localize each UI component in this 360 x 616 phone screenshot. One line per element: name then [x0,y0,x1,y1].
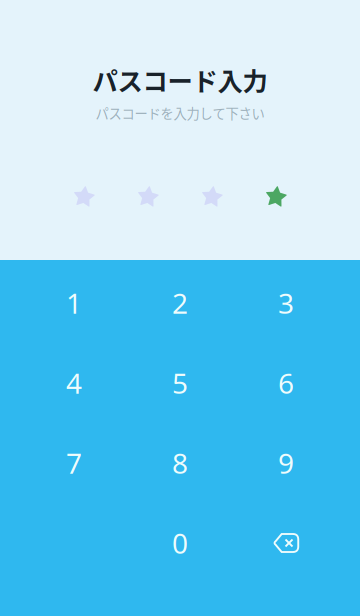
staticText: パスコード入力 [92,61,267,98]
staticText: 7 [66,444,82,482]
staticText: パスコードを入力して下さい [95,103,264,123]
button[interactable]: 6 [233,344,339,422]
button[interactable]: 1 [21,264,127,342]
staticText: 9 [278,444,294,482]
staticText: 1 [66,284,82,322]
staticText: 3 [278,284,294,322]
button[interactable]: 2 [127,264,233,342]
button[interactable]: 4 [21,344,127,422]
button[interactable]: Delete [233,504,339,582]
staticText: 6 [278,364,294,402]
staticText: 4 [66,364,82,402]
staticText: 2 [172,284,188,322]
button[interactable]: 3 [233,264,339,342]
staticText: 5 [172,364,188,402]
button[interactable]: 7 [21,424,127,502]
staticText: 8 [172,444,188,482]
button[interactable]: 9 [233,424,339,502]
button[interactable]: 0 [127,504,233,582]
button[interactable]: 8 [127,424,233,502]
button[interactable]: 5 [127,344,233,422]
staticText: 0 [172,524,188,562]
